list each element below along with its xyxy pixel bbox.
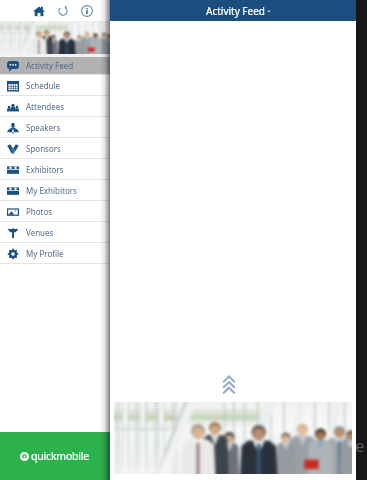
- button[interactable]: Activity Feed: [0, 57, 110, 74]
- button[interactable]: Speakers: [0, 117, 110, 137]
- staticText: Sponsors: [26, 143, 61, 154]
- button[interactable]: Attendees: [0, 96, 110, 116]
- staticText: e: [355, 434, 365, 457]
- staticText: Activity Feed: [26, 60, 74, 71]
- staticText: Attendees: [26, 101, 65, 112]
- button[interactable]: Exhibitors: [0, 159, 110, 179]
- button[interactable]: Activity Feed: [110, 0, 367, 21]
- button[interactable]: Refresh: [52, 0, 73, 21]
- button[interactable]: Sponsors: [0, 138, 110, 158]
- other: Scroll up: [223, 375, 235, 394]
- button[interactable]: My Exhibitors: [0, 180, 110, 200]
- button[interactable]: My Profile: [0, 243, 110, 263]
- staticText: My Exhibitors: [26, 185, 77, 196]
- staticText: My Profile: [26, 248, 64, 259]
- staticText: Activity Feed: [206, 4, 265, 18]
- button[interactable]: Schedule: [0, 75, 110, 95]
- button[interactable]: Home: [28, 0, 49, 21]
- button[interactable]: Info: [76, 0, 97, 21]
- staticText: Speakers: [26, 122, 61, 133]
- button[interactable]: quickmobile: [0, 432, 110, 480]
- button[interactable]: Photos: [0, 201, 110, 221]
- staticText: Schedule: [26, 80, 61, 91]
- staticText: Venues: [26, 227, 54, 238]
- staticText: quickmobile: [31, 449, 90, 463]
- staticText: Photos: [26, 206, 53, 217]
- staticText: Exhibitors: [26, 164, 64, 175]
- button[interactable]: Venues: [0, 222, 110, 242]
